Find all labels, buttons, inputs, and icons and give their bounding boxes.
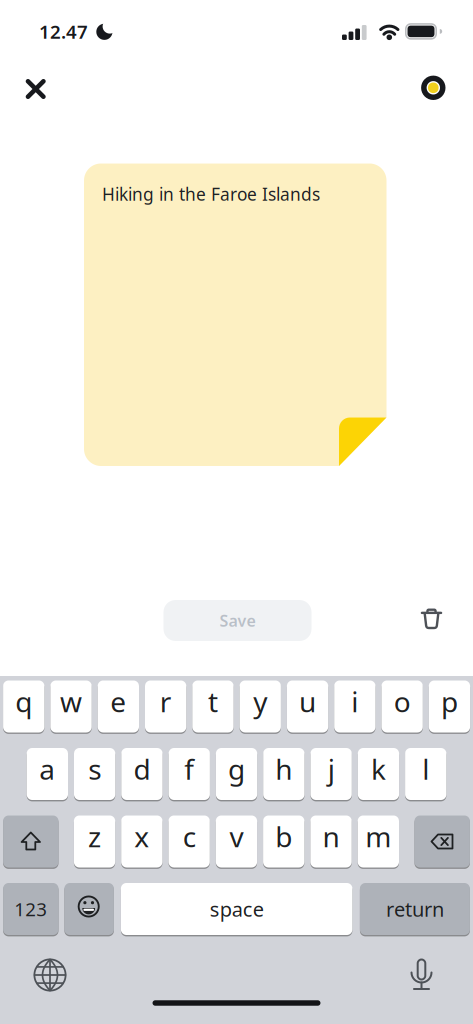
- staticText: Save: [219, 610, 255, 631]
- button[interactable]: u: [287, 680, 328, 732]
- staticText: i: [351, 683, 358, 720]
- staticText: w: [60, 683, 82, 720]
- staticText: u: [299, 683, 316, 720]
- staticText: c: [183, 818, 196, 855]
- button[interactable]: p: [429, 680, 470, 732]
- button[interactable]: x: [121, 815, 162, 867]
- button[interactable]: Save: [163, 600, 311, 641]
- staticText: j: [328, 750, 335, 788]
- button[interactable]: Delete: [414, 815, 470, 867]
- button[interactable]: Dictate: [411, 958, 432, 990]
- button[interactable]: d: [121, 748, 163, 800]
- staticText: b: [275, 818, 292, 855]
- staticText: x: [134, 818, 149, 855]
- staticText: a: [39, 750, 55, 788]
- staticText: q: [15, 683, 32, 720]
- staticText: h: [275, 750, 292, 788]
- button[interactable]: c: [168, 815, 210, 867]
- staticText: f: [184, 750, 194, 788]
- staticText: e: [110, 683, 126, 720]
- button[interactable]: j: [310, 748, 352, 800]
- button[interactable]: g: [216, 748, 257, 800]
- button[interactable]: s: [74, 748, 115, 800]
- staticText: Hiking in the Faroe Islands: [102, 182, 320, 205]
- staticText: y: [253, 683, 267, 720]
- staticText: o: [394, 683, 411, 720]
- button[interactable]: z: [74, 815, 115, 867]
- staticText: return: [386, 896, 444, 922]
- staticText: g: [228, 750, 245, 788]
- button[interactable]: Emoji: [64, 883, 114, 935]
- button[interactable]: w: [50, 680, 92, 732]
- button[interactable]: n: [310, 815, 352, 867]
- button[interactable]: Close: [26, 79, 46, 99]
- button[interactable]: m: [358, 815, 399, 867]
- staticText: t: [208, 683, 218, 720]
- staticText: 12.47: [39, 19, 88, 44]
- staticText: d: [133, 750, 150, 788]
- staticText: space: [210, 896, 264, 922]
- button[interactable]: y: [240, 680, 281, 732]
- button[interactable]: h: [263, 748, 304, 800]
- staticText: k: [371, 750, 386, 788]
- button[interactable]: v: [216, 815, 257, 867]
- staticText: 123: [14, 897, 47, 921]
- button[interactable]: space: [121, 883, 352, 935]
- staticText: l: [422, 750, 429, 788]
- staticText: p: [441, 683, 458, 720]
- button[interactable]: r: [145, 680, 186, 732]
- button[interactable]: t: [192, 680, 234, 732]
- button[interactable]: l: [405, 748, 446, 800]
- button[interactable]: Next keyboard: [33, 958, 66, 991]
- staticText: v: [229, 818, 243, 855]
- button[interactable]: e: [98, 680, 139, 732]
- staticText: s: [88, 750, 101, 788]
- button[interactable]: b: [263, 815, 304, 867]
- staticText: n: [322, 818, 339, 855]
- button[interactable]: Numbers: [3, 883, 58, 935]
- button[interactable]: return: [360, 883, 470, 935]
- staticText: r: [160, 683, 172, 720]
- button[interactable]: f: [169, 748, 210, 800]
- button[interactable]: Delete note: [421, 607, 442, 629]
- button[interactable]: k: [358, 748, 399, 800]
- button[interactable]: Note color: [421, 76, 445, 100]
- button[interactable]: i: [334, 680, 375, 732]
- staticText: m: [365, 818, 391, 855]
- button[interactable]: o: [381, 680, 423, 732]
- staticText: z: [88, 818, 101, 855]
- button[interactable]: q: [3, 680, 44, 732]
- button[interactable]: Shift: [3, 815, 58, 867]
- button[interactable]: a: [27, 748, 68, 800]
